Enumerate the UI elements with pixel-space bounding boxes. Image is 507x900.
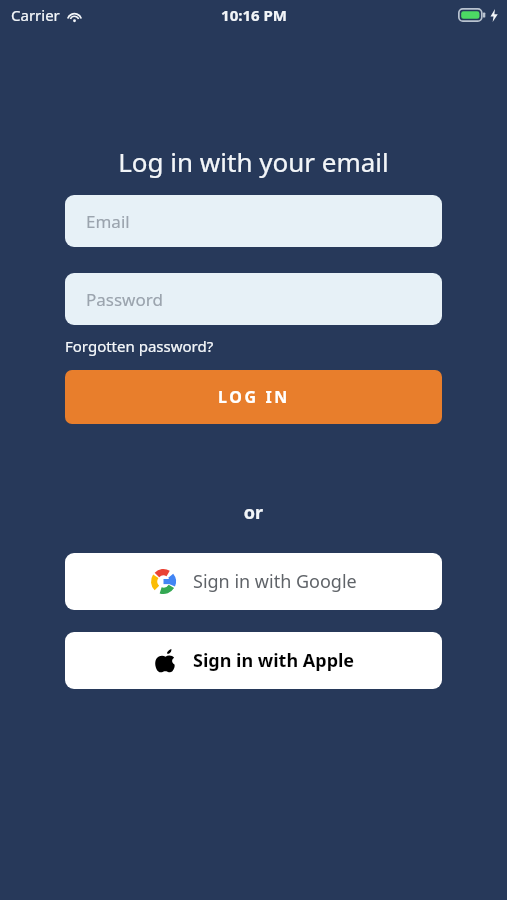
button[interactable]: Password xyxy=(65,273,442,325)
staticText: Carrier xyxy=(11,5,60,25)
button[interactable]: Google logo xyxy=(65,553,442,610)
staticText: Email xyxy=(86,210,130,233)
staticText: Sign in with Apple xyxy=(193,648,355,673)
button[interactable]: Forgotten password? xyxy=(65,336,214,356)
staticText: 10:16 PM xyxy=(221,5,287,25)
staticText: LOG IN xyxy=(218,386,290,408)
other: Google logo xyxy=(151,569,176,594)
other: Apple logo xyxy=(153,648,178,673)
staticText: Sign in with Google xyxy=(193,569,357,594)
button[interactable]: Apple logo xyxy=(65,632,442,689)
staticText: or xyxy=(0,500,507,525)
staticText: Password xyxy=(86,288,163,311)
other: Battery charging xyxy=(458,8,486,22)
other: Wi-Fi xyxy=(67,8,82,23)
staticText: Forgotten password? xyxy=(65,336,214,356)
button[interactable]: LOG IN xyxy=(65,370,442,424)
staticText: Log in with your email xyxy=(0,144,507,179)
button[interactable]: Email xyxy=(65,195,442,247)
